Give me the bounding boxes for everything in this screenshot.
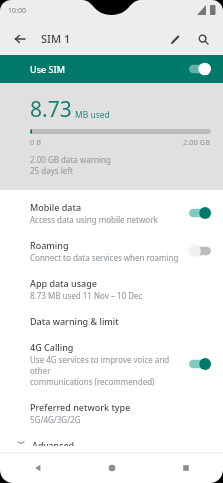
button[interactable]: Back xyxy=(0,453,75,483)
staticText: MB used xyxy=(75,109,110,121)
staticText: App data usage xyxy=(30,277,97,289)
button[interactable]: Data warning & limit xyxy=(0,308,223,334)
button[interactable]: Use SIM xyxy=(0,55,223,83)
staticText: Access data using mobile network xyxy=(30,214,158,225)
button[interactable]: Roaming xyxy=(0,232,223,270)
staticText: 2.00 GB data warning xyxy=(30,154,111,165)
staticText: 2.00 GB xyxy=(183,137,211,147)
staticText: Use 4G services to improve voice and oth… xyxy=(30,354,183,376)
staticText: 8.73 xyxy=(30,95,72,124)
button[interactable]: Home xyxy=(75,453,149,483)
staticText: 0 B xyxy=(30,137,42,147)
staticText: Mobile data xyxy=(30,201,82,213)
button[interactable]: Mobile data xyxy=(0,194,223,232)
staticText: Connect to data services when roaming xyxy=(30,252,179,263)
button[interactable]: 8.73 xyxy=(0,83,223,190)
staticText: 4G Calling xyxy=(30,341,74,353)
staticText: Advanced xyxy=(32,439,75,446)
staticText: communications (recommended) xyxy=(30,376,155,387)
button[interactable]: Edit xyxy=(164,28,186,50)
staticText: 5G/4G/3G/2G xyxy=(30,414,81,425)
staticText: 10:00 xyxy=(8,6,26,16)
staticText: 8.73 MB used 11 Nov – 10 Dec xyxy=(30,290,143,301)
button[interactable]: App data usage xyxy=(0,270,223,308)
button[interactable]: Preferred network type xyxy=(0,394,223,432)
staticText: Roaming xyxy=(30,239,69,251)
button[interactable]: Advanced xyxy=(0,432,223,453)
staticText: 25 days left xyxy=(30,165,73,176)
button[interactable]: 4G Calling xyxy=(0,334,223,394)
button[interactable]: Search xyxy=(192,28,214,50)
staticText: Preferred network type xyxy=(30,401,131,413)
button[interactable]: Recent apps xyxy=(149,453,223,483)
staticText: SIM 1 xyxy=(41,31,71,46)
staticText: Use SIM xyxy=(30,63,65,75)
button[interactable]: Back xyxy=(9,28,31,50)
staticText: Data warning & limit xyxy=(30,315,119,327)
